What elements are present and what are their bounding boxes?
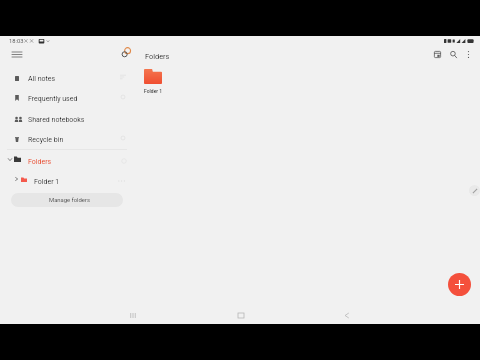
- button[interactable]: Shared notebooks: [0, 109, 134, 129]
- staticText: All notes: [28, 75, 56, 83]
- button[interactable]: Folder 1: [140, 66, 166, 94]
- button[interactable]: Pen settings: [469, 185, 480, 196]
- button[interactable]: Folders: [0, 151, 134, 171]
- button[interactable]: Frequently used: [0, 88, 134, 108]
- button[interactable]: Recycle bin: [0, 129, 134, 149]
- button[interactable]: All notes: [0, 68, 134, 88]
- staticText: Folders: [28, 158, 52, 166]
- button[interactable]: Home: [232, 306, 250, 324]
- button[interactable]: Search: [447, 48, 460, 61]
- staticText: Folders: [145, 52, 170, 61]
- button[interactable]: Folder 1: [0, 171, 134, 191]
- staticText: 18:03: [9, 38, 24, 45]
- staticText: Folder 1: [34, 178, 60, 186]
- staticText: Frequently used: [28, 95, 78, 103]
- button[interactable]: Navigation menu: [7, 44, 26, 63]
- button[interactable]: Manage folders: [11, 193, 123, 207]
- button[interactable]: Back: [338, 306, 356, 324]
- button[interactable]: More options: [462, 48, 475, 61]
- staticText: Folder 1: [144, 88, 163, 94]
- staticText: Recycle bin: [28, 136, 64, 144]
- button[interactable]: Notebook view: [431, 48, 444, 61]
- staticText: Shared notebooks: [28, 116, 85, 124]
- staticText: Manage folders: [49, 197, 91, 204]
- button[interactable]: Create note: [448, 273, 471, 296]
- button[interactable]: Recent apps: [124, 306, 142, 324]
